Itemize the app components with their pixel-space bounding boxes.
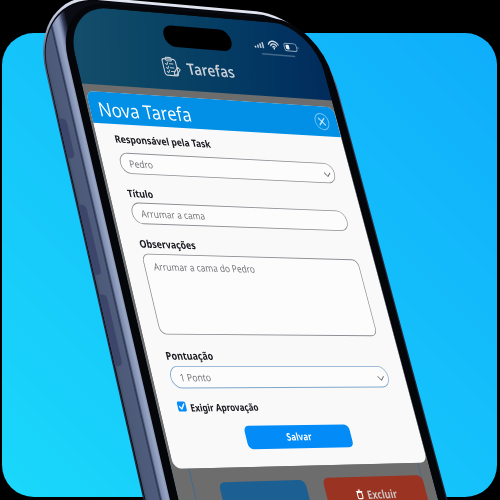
button[interactable]: Tarefas app mockup (0, 0, 500, 500)
